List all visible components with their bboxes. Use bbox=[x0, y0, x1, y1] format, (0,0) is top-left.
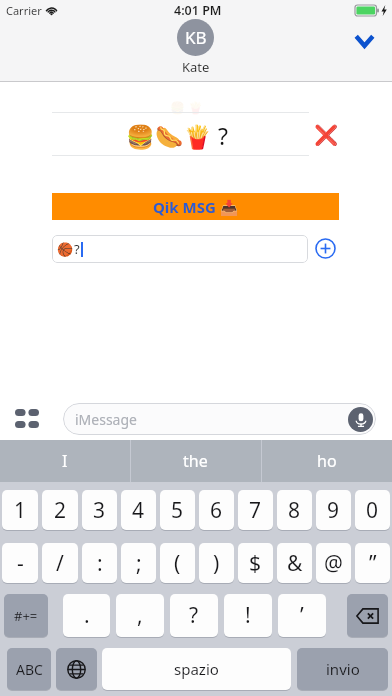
staticText: 6 bbox=[210, 496, 223, 525]
staticText: iMessage bbox=[75, 410, 137, 429]
button[interactable]: ) bbox=[199, 543, 234, 583]
button[interactable]: Qik MSG 📥 bbox=[52, 193, 339, 220]
staticText: 8 bbox=[288, 496, 301, 525]
staticText: & bbox=[287, 549, 303, 578]
staticText: 0 bbox=[366, 496, 379, 525]
button[interactable]: : bbox=[82, 543, 117, 583]
button[interactable]: ” bbox=[355, 543, 390, 583]
button[interactable]: 8 bbox=[277, 490, 312, 530]
button[interactable]: Backspace bbox=[347, 594, 388, 637]
staticText: 2 bbox=[54, 496, 67, 525]
button[interactable]: ? bbox=[170, 594, 218, 637]
staticText: spazio bbox=[174, 659, 219, 679]
button[interactable]: ho bbox=[261, 440, 392, 482]
button[interactable]: spazio bbox=[102, 648, 291, 690]
button[interactable]: $ bbox=[238, 543, 273, 583]
staticText: ? bbox=[74, 240, 80, 258]
staticText: the bbox=[183, 450, 208, 472]
staticText: #+= bbox=[14, 607, 38, 625]
staticText: ” bbox=[369, 549, 377, 578]
staticText: ; bbox=[136, 549, 142, 578]
staticText: . bbox=[84, 601, 90, 630]
staticText: @ bbox=[324, 549, 343, 578]
staticText: ho bbox=[317, 450, 337, 472]
button[interactable]: the bbox=[130, 440, 261, 482]
button[interactable]: 3 bbox=[82, 490, 117, 530]
staticText: ( bbox=[174, 549, 181, 578]
staticText: 1 bbox=[14, 496, 27, 525]
staticText: I bbox=[62, 450, 68, 472]
staticText: 3 bbox=[93, 496, 106, 525]
button[interactable]: 7 bbox=[238, 490, 273, 530]
staticText: invio bbox=[326, 659, 360, 679]
button[interactable]: Add bbox=[315, 238, 336, 259]
staticText: 4:01 PM bbox=[174, 2, 222, 19]
button[interactable]: / bbox=[42, 543, 78, 583]
button[interactable]: Dictate bbox=[348, 407, 373, 432]
button[interactable]: 🏀 bbox=[52, 235, 308, 263]
staticText: 7 bbox=[249, 496, 262, 525]
staticText: 🏀 bbox=[57, 242, 74, 257]
staticText: ABC bbox=[16, 660, 43, 679]
button[interactable]: ! bbox=[224, 594, 272, 637]
staticText: : bbox=[97, 549, 103, 578]
staticText: $ bbox=[249, 549, 262, 578]
button[interactable]: @ bbox=[316, 543, 351, 583]
staticText: ) bbox=[213, 549, 220, 578]
button[interactable]: 5 bbox=[160, 490, 195, 530]
button[interactable]: , bbox=[116, 594, 164, 637]
button[interactable]: 1 bbox=[2, 490, 38, 530]
staticText: , bbox=[137, 601, 143, 630]
staticText: ! bbox=[245, 601, 251, 630]
button[interactable]: ’ bbox=[278, 594, 326, 637]
button[interactable]: 9 bbox=[316, 490, 351, 530]
staticText: 🍔 🍟 bbox=[170, 99, 204, 115]
button[interactable]: ( bbox=[160, 543, 195, 583]
staticText: Carrier bbox=[6, 3, 42, 18]
staticText: / bbox=[56, 549, 64, 578]
staticText: Qik MSG 📥 bbox=[153, 197, 239, 217]
button[interactable]: - bbox=[2, 543, 38, 583]
button[interactable]: Collapse bbox=[346, 23, 382, 59]
staticText: ? bbox=[189, 601, 199, 630]
button[interactable]: invio bbox=[297, 648, 388, 690]
staticText: Kate bbox=[182, 58, 210, 76]
button[interactable]: #+= bbox=[4, 594, 48, 637]
button[interactable]: . bbox=[63, 594, 110, 637]
staticText: - bbox=[17, 549, 24, 578]
button[interactable]: 4 bbox=[121, 490, 156, 530]
button[interactable]: 2 bbox=[42, 490, 78, 530]
staticText: ❌ bbox=[314, 124, 339, 147]
button[interactable]: Apps bbox=[15, 409, 39, 428]
button[interactable]: ; bbox=[121, 543, 156, 583]
button[interactable]: Change language bbox=[56, 648, 97, 690]
button[interactable]: 0 bbox=[355, 490, 390, 530]
staticText: ’ bbox=[300, 601, 304, 630]
staticText: 9 bbox=[327, 496, 340, 525]
button[interactable]: 6 bbox=[199, 490, 234, 530]
staticText: KB bbox=[185, 26, 207, 49]
button[interactable]: KB bbox=[177, 19, 214, 56]
staticText: 4 bbox=[132, 496, 145, 525]
button[interactable]: & bbox=[277, 543, 312, 583]
button[interactable]: I bbox=[0, 440, 130, 482]
staticText: 5 bbox=[171, 496, 184, 525]
staticText: 🍔🌭🍟 ? bbox=[126, 120, 228, 151]
button[interactable]: iMessage bbox=[63, 403, 376, 435]
button[interactable]: ABC bbox=[7, 648, 51, 690]
